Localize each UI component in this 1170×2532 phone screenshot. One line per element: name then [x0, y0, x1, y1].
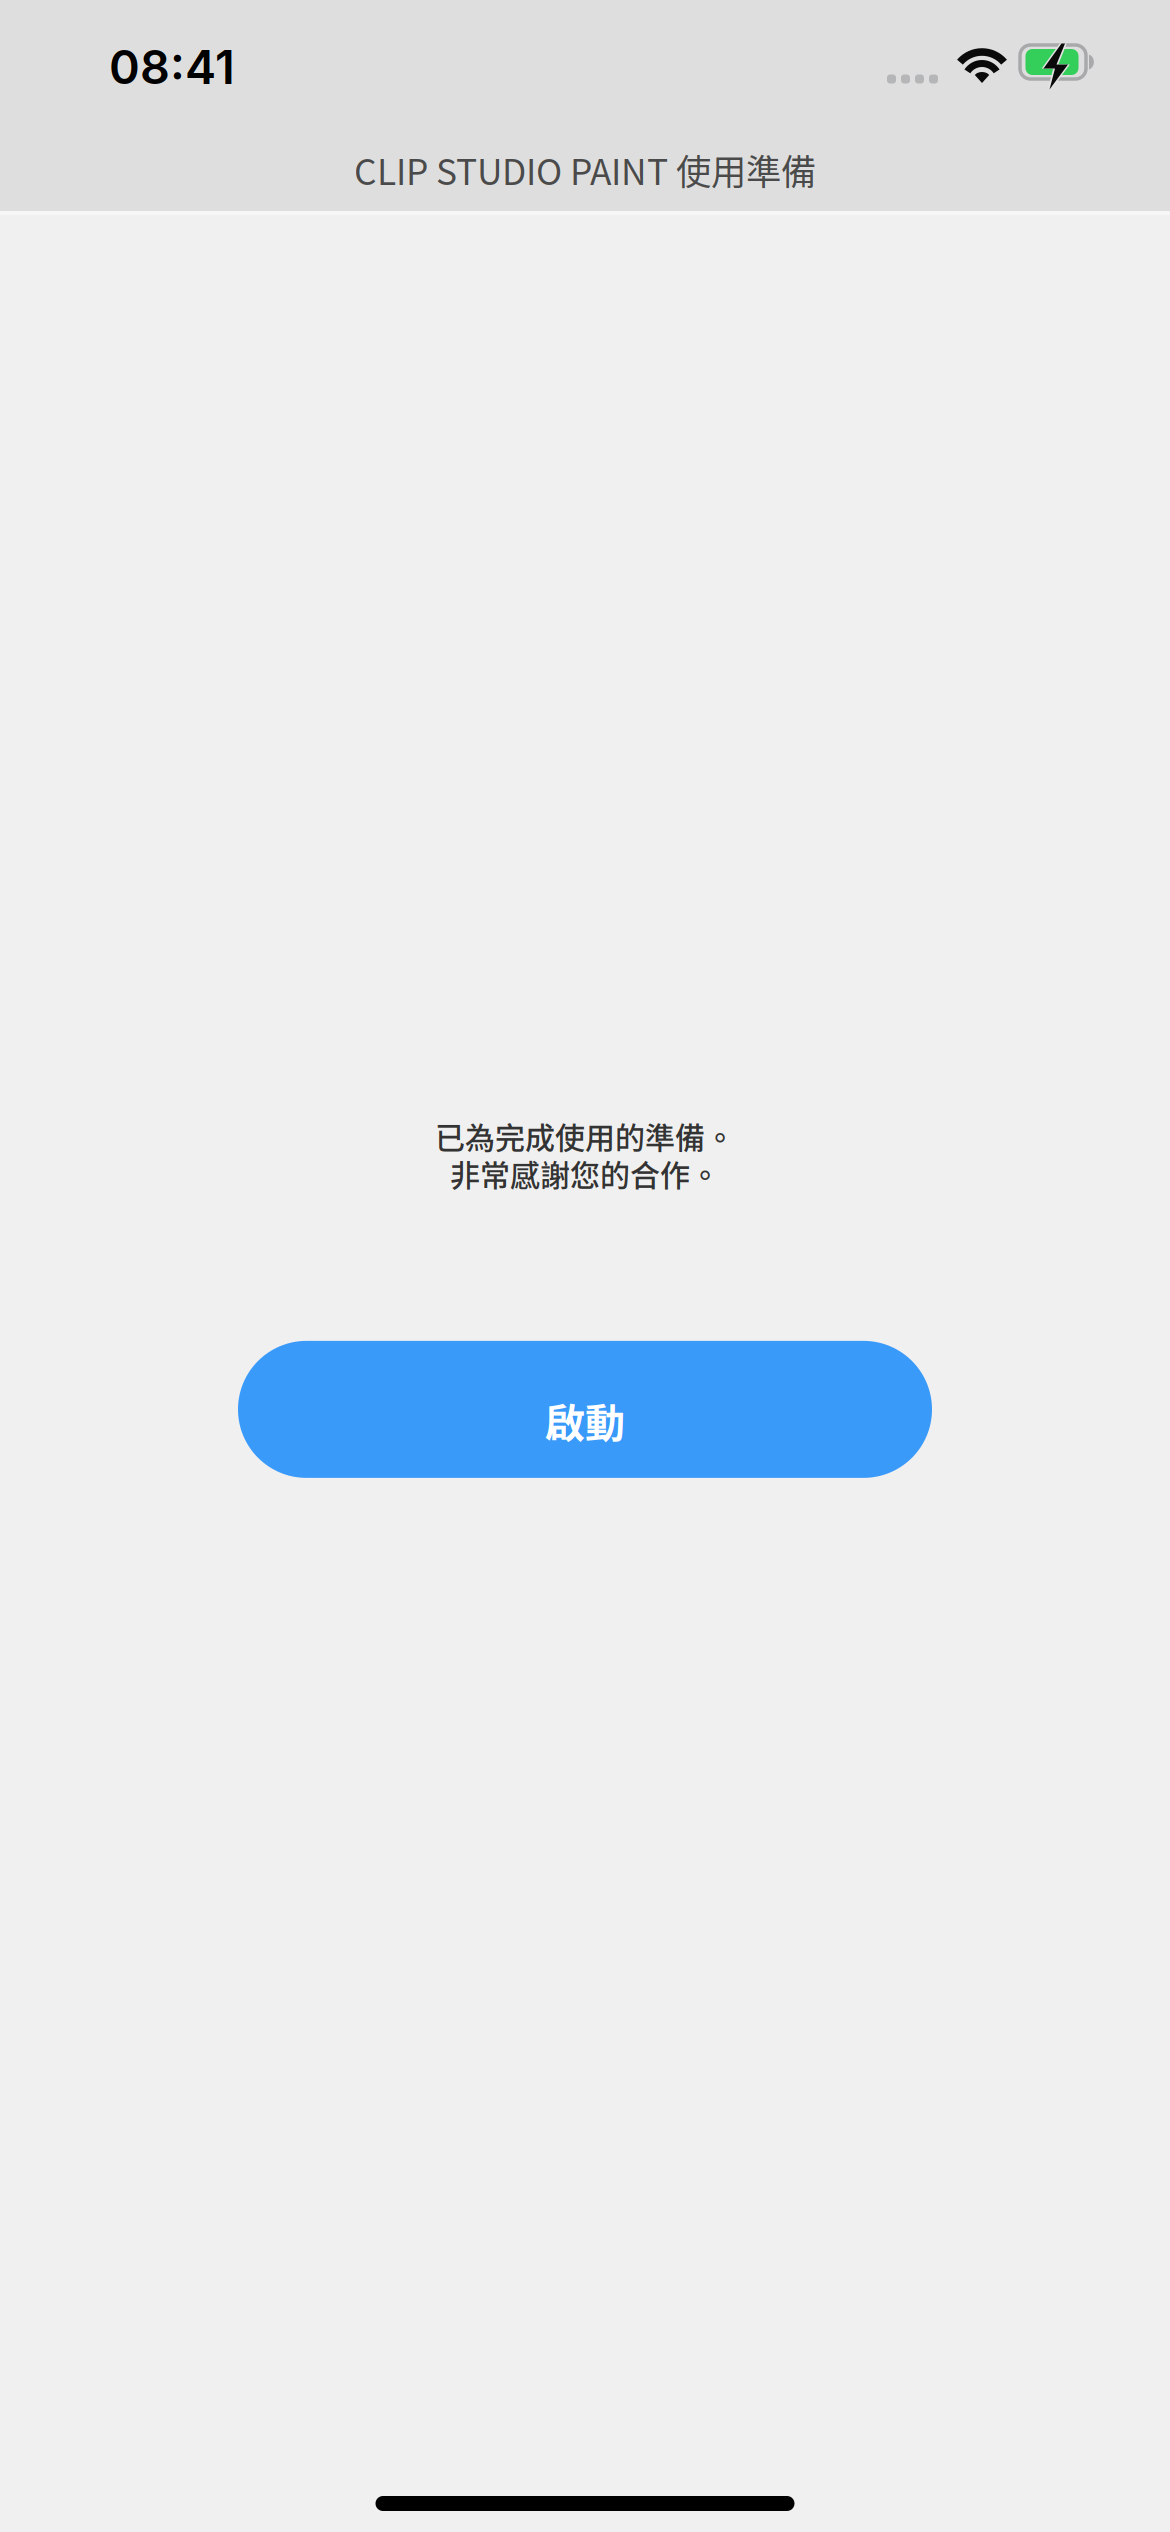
staticText: 已為完成使用的準備。	[435, 1114, 735, 1157]
staticText: 非常感謝您的合作。	[450, 1151, 720, 1195]
staticText: 啟動	[545, 1391, 625, 1449]
staticText: CLIP STUDIO PAINT 使用準備	[354, 144, 816, 195]
button[interactable]: 啟動	[238, 1341, 932, 1478]
staticText: 08:41	[109, 39, 235, 95]
